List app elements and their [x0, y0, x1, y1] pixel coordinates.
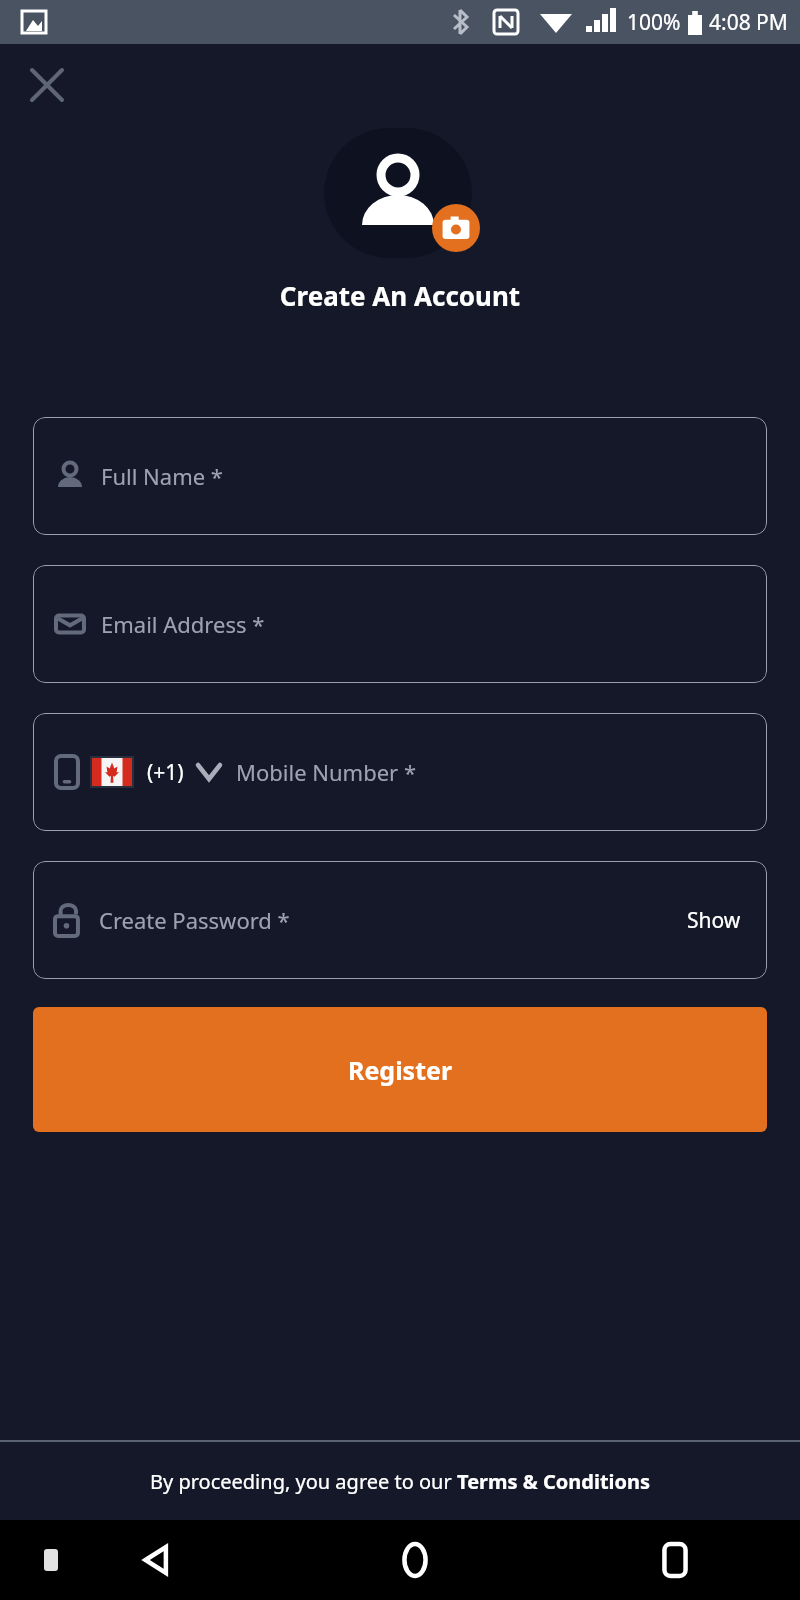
- staticText: Terms & Conditions: [457, 1468, 651, 1495]
- staticText: 4:08 PM: [709, 8, 788, 37]
- staticText: Show: [687, 906, 741, 935]
- button[interactable]: Take photo: [432, 204, 480, 252]
- staticText: Full Name *: [101, 461, 223, 491]
- button[interactable]: Create Password *: [33, 861, 767, 979]
- button[interactable]: Email Address *: [33, 565, 767, 683]
- staticText: (+1): [147, 758, 184, 787]
- button[interactable]: (+1): [33, 713, 767, 831]
- button[interactable]: Register: [33, 1007, 767, 1132]
- button[interactable]: Show: [683, 900, 745, 941]
- button[interactable]: Home: [380, 1525, 450, 1595]
- staticText: Register: [348, 1053, 453, 1087]
- button[interactable]: Full Name *: [33, 417, 767, 535]
- button[interactable]: Back: [120, 1525, 190, 1595]
- staticText: By proceeding, you agree to our: [150, 1468, 457, 1495]
- button[interactable]: Terms & Conditions: [457, 1468, 651, 1495]
- button[interactable]: Recent apps: [640, 1525, 710, 1595]
- staticText: Create Password *: [99, 905, 290, 935]
- staticText: Email Address *: [101, 609, 265, 639]
- staticText: 100%: [627, 8, 681, 37]
- staticText: Create An Account: [0, 278, 800, 313]
- button[interactable]: Close: [18, 56, 76, 114]
- staticText: Mobile Number *: [236, 757, 417, 787]
- button[interactable]: Change profile photo: [324, 128, 472, 258]
